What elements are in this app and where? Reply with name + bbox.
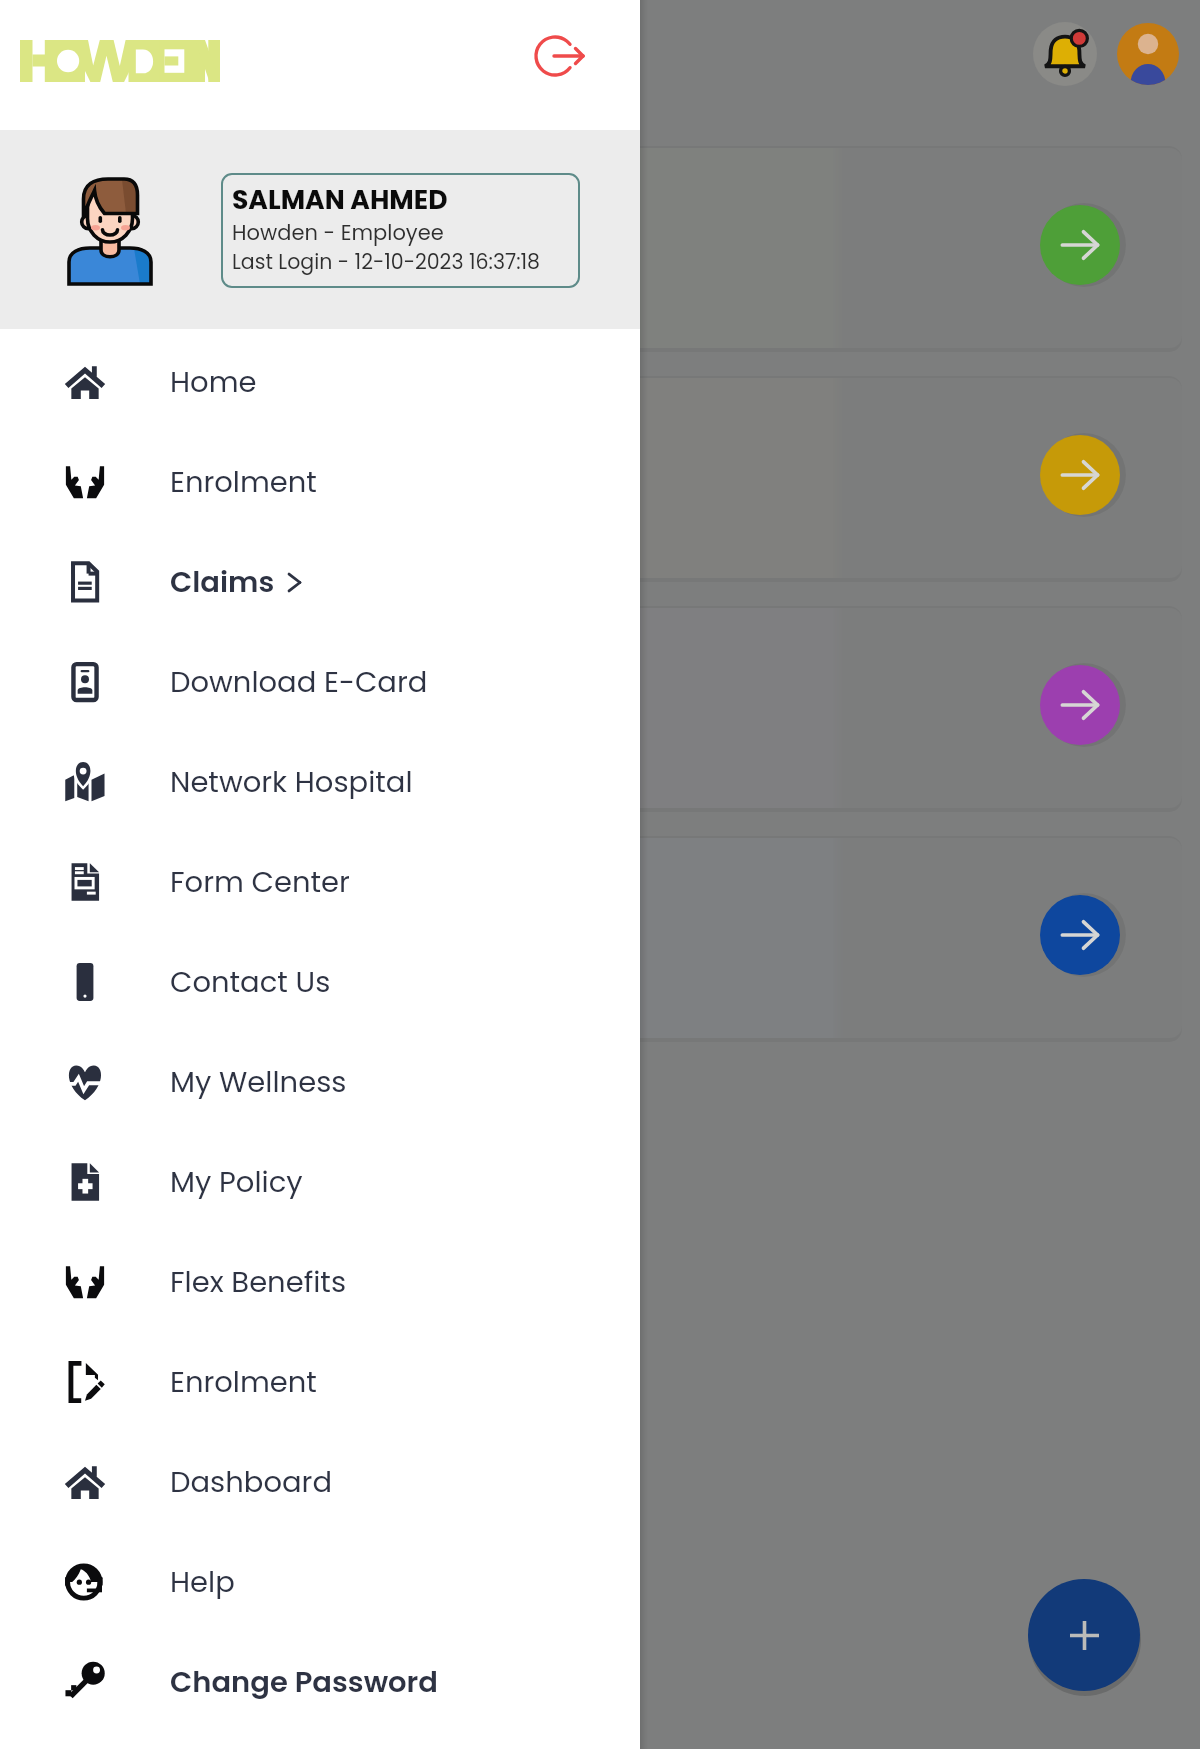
button[interactable]: Change Password	[0, 1632, 640, 1732]
button[interactable]: Download E-Card	[0, 632, 640, 732]
staticText: Download E-Card	[170, 662, 428, 703]
button[interactable]: Open	[1040, 665, 1120, 745]
staticText: Flex Benefits	[170, 1262, 347, 1303]
button[interactable]: Open	[1040, 895, 1120, 975]
staticText: Change Password	[170, 1662, 438, 1703]
button[interactable]: Logout	[529, 24, 593, 88]
staticText: Help	[170, 1562, 235, 1603]
button[interactable]: Open	[1040, 435, 1120, 515]
staticText: Network Hospital	[170, 762, 413, 803]
button[interactable]: Network Hospital	[0, 732, 640, 832]
button[interactable]: Add	[1028, 1579, 1140, 1691]
button[interactable]: Profile	[1117, 23, 1179, 85]
staticText: Form Center	[170, 862, 350, 903]
staticText: Howden - Employee	[232, 218, 444, 247]
staticText: Home	[170, 362, 257, 403]
button[interactable]: Open	[18, 148, 1182, 348]
button[interactable]: Open	[18, 378, 1182, 578]
button[interactable]: Help	[0, 1532, 640, 1632]
staticText: Enrolment	[170, 462, 317, 503]
button[interactable]: Open	[18, 838, 1182, 1038]
staticText: My Policy	[170, 1162, 303, 1203]
button[interactable]: My Policy	[0, 1132, 640, 1232]
button[interactable]: Dashboard	[0, 1432, 640, 1532]
button[interactable]: My Wellness	[0, 1032, 640, 1132]
button[interactable]: Open	[1040, 205, 1120, 285]
staticText: Claims	[170, 562, 275, 603]
button[interactable]: Home	[0, 332, 640, 432]
staticText: Contact Us	[170, 962, 331, 1003]
staticText: Enrolment	[170, 1362, 317, 1403]
staticText: Dashboard	[170, 1462, 332, 1503]
button[interactable]: Enrolment	[0, 1332, 640, 1432]
button[interactable]: Form Center	[0, 832, 640, 932]
button[interactable]: Open	[18, 608, 1182, 808]
staticText: SALMAN AHMED	[232, 181, 448, 218]
button[interactable]: Enrolment	[0, 432, 640, 532]
staticText: Last Login - 12-10-2023 16:37:18	[232, 247, 541, 276]
button[interactable]: Claims	[0, 532, 640, 632]
button[interactable]: Flex Benefits	[0, 1232, 640, 1332]
staticText: My Wellness	[170, 1062, 347, 1103]
button[interactable]: SALMAN AHMED	[0, 130, 640, 329]
button[interactable]: Notifications	[1033, 22, 1097, 86]
button[interactable]: Contact Us	[0, 932, 640, 1032]
